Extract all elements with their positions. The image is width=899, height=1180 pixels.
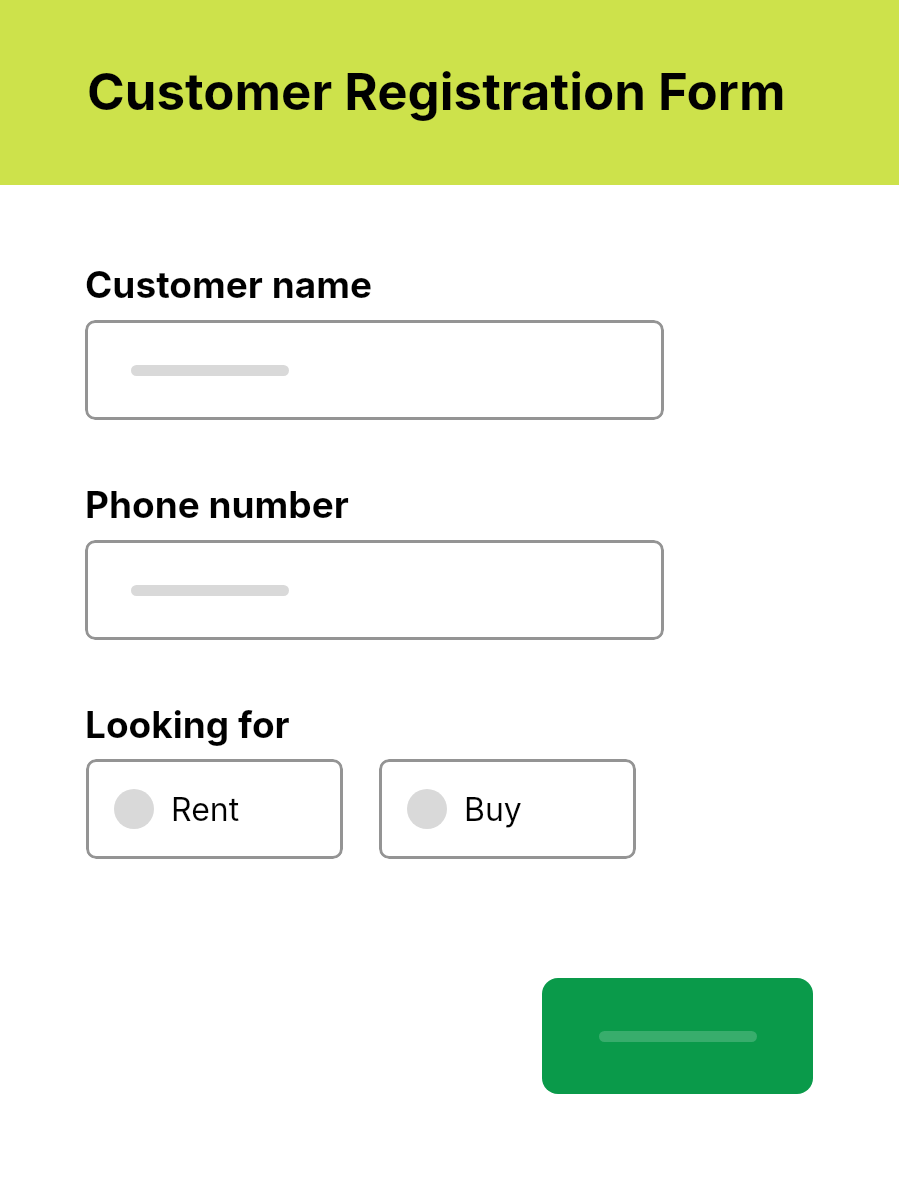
button[interactable]: Customer name input bbox=[85, 320, 664, 420]
staticText: Customer name bbox=[85, 262, 372, 307]
staticText: Rent bbox=[171, 790, 240, 829]
staticText: Phone number bbox=[85, 482, 349, 527]
staticText: Customer Registration Form bbox=[87, 61, 786, 123]
staticText: Looking for bbox=[85, 702, 290, 747]
staticText: Buy bbox=[464, 790, 522, 829]
button[interactable]: Phone number input bbox=[85, 540, 664, 640]
button[interactable]: Rent bbox=[86, 759, 343, 859]
button[interactable]: Submit bbox=[542, 978, 813, 1094]
button[interactable]: Buy bbox=[379, 759, 636, 859]
